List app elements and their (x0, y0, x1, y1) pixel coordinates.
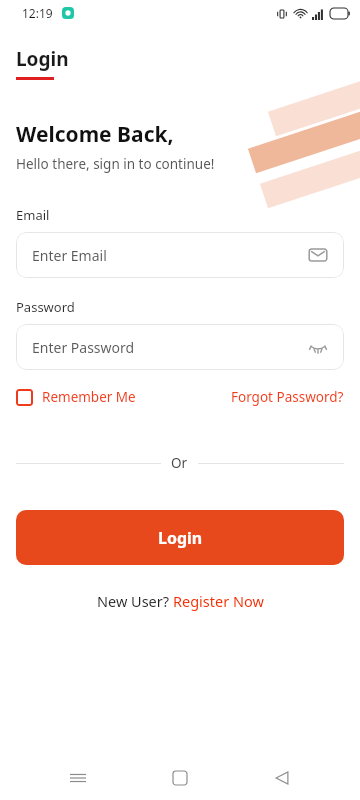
staticText: Password (16, 298, 75, 316)
staticText: Remember Me (42, 388, 136, 406)
staticText: Register Now (173, 591, 264, 611)
staticText: Hello there, sign in to continue! (16, 155, 215, 173)
button[interactable]: Home (156, 756, 204, 800)
staticText: 12:19 (22, 5, 53, 21)
other: Show password (308, 337, 328, 357)
button[interactable]: Remember Me (16, 388, 136, 406)
other: Email icon (308, 245, 328, 265)
staticText: Forgot Password? (231, 388, 344, 406)
button[interactable]: Back (258, 756, 306, 800)
button[interactable]: Forgot Password? (231, 388, 344, 406)
button[interactable]: New User? (0, 591, 360, 611)
staticText: Or (171, 454, 188, 472)
staticText: Enter Email (32, 246, 308, 265)
button[interactable]: Enter Email (16, 232, 344, 278)
button[interactable]: Recent apps (54, 756, 102, 800)
button[interactable]: Enter Password (16, 324, 344, 370)
staticText: Welcome Back, (16, 120, 174, 149)
staticText: Login (158, 527, 203, 549)
staticText: Email (16, 206, 50, 224)
staticText: Enter Password (32, 338, 308, 357)
button[interactable]: Login (16, 510, 344, 565)
staticText: New User? (97, 591, 173, 611)
staticText: Login (16, 46, 69, 72)
